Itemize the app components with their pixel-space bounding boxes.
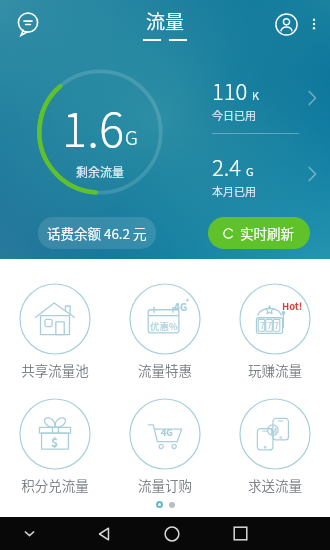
button[interactable]: 实时刷新 <box>208 217 310 249</box>
staticText: 共享流量池 <box>21 360 89 380</box>
staticText: 流量特惠 <box>138 360 192 380</box>
button[interactable]: More options <box>303 13 325 35</box>
staticText: 本月已用 <box>212 183 256 199</box>
staticText: 今日已用 <box>212 107 256 123</box>
staticText: 实时刷新 <box>240 223 294 243</box>
staticText: 2.4 <box>212 150 242 182</box>
button[interactable]: Back <box>82 517 126 550</box>
button[interactable]: 7 <box>220 283 330 380</box>
button[interactable]: 4G <box>110 398 220 495</box>
button[interactable]: M <box>220 398 330 495</box>
staticText: K <box>252 87 260 103</box>
staticText: Hot! <box>282 299 303 313</box>
staticText: 7 <box>267 319 272 332</box>
button[interactable]: Home <box>150 517 194 550</box>
staticText: 剩余流量 <box>76 163 125 180</box>
staticText: 4G <box>174 299 188 313</box>
button[interactable]: Hide keyboard <box>0 517 58 550</box>
staticText: M <box>270 425 278 438</box>
button[interactable]: 话费余额 46.2 元 <box>38 217 156 249</box>
staticText: 110 <box>212 74 248 106</box>
staticText: 玩赚流量 <box>248 360 302 380</box>
staticText: 优惠% <box>150 319 178 333</box>
button[interactable]: 共享流量池 <box>0 283 110 380</box>
button[interactable]: Messages <box>10 6 46 42</box>
button[interactable]: Profile <box>269 7 303 41</box>
staticText: 7 <box>274 319 279 332</box>
button[interactable]: $ <box>0 398 110 495</box>
staticText: G <box>125 123 138 151</box>
staticText: $ <box>51 433 59 450</box>
staticText: 4G <box>161 426 173 439</box>
button[interactable]: 优惠% <box>110 283 220 380</box>
staticText: 1.6 <box>62 92 125 160</box>
staticText: 求送流量 <box>248 475 302 495</box>
staticText: 7 <box>260 319 265 332</box>
button[interactable]: 2.4 <box>206 134 326 214</box>
button[interactable]: Recent apps <box>218 517 262 550</box>
staticText: 话费余额 46.2 元 <box>47 223 147 243</box>
staticText: 流量 <box>146 7 185 35</box>
staticText: 积分兑流量 <box>21 475 89 495</box>
staticText: G <box>246 163 254 179</box>
staticText: 流量订购 <box>138 475 192 495</box>
button[interactable]: 110 <box>206 63 326 133</box>
